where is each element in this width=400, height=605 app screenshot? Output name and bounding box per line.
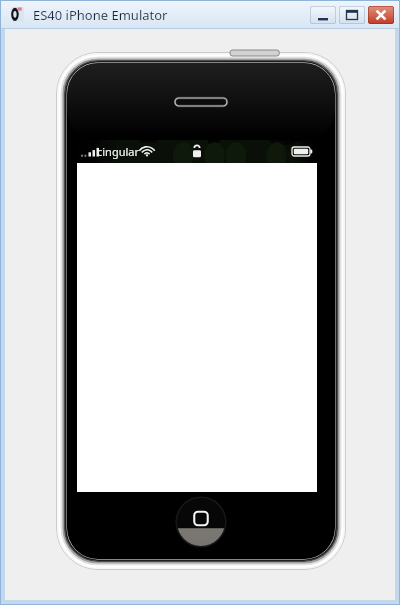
button[interactable]: Home [177, 498, 225, 544]
button[interactable]: Close [368, 6, 394, 24]
button[interactable]: Maximize [339, 6, 365, 24]
staticText: ES40 iPhone Emulator [33, 6, 168, 24]
staticText: cingular [97, 144, 140, 159]
button[interactable]: Minimize [310, 6, 336, 24]
